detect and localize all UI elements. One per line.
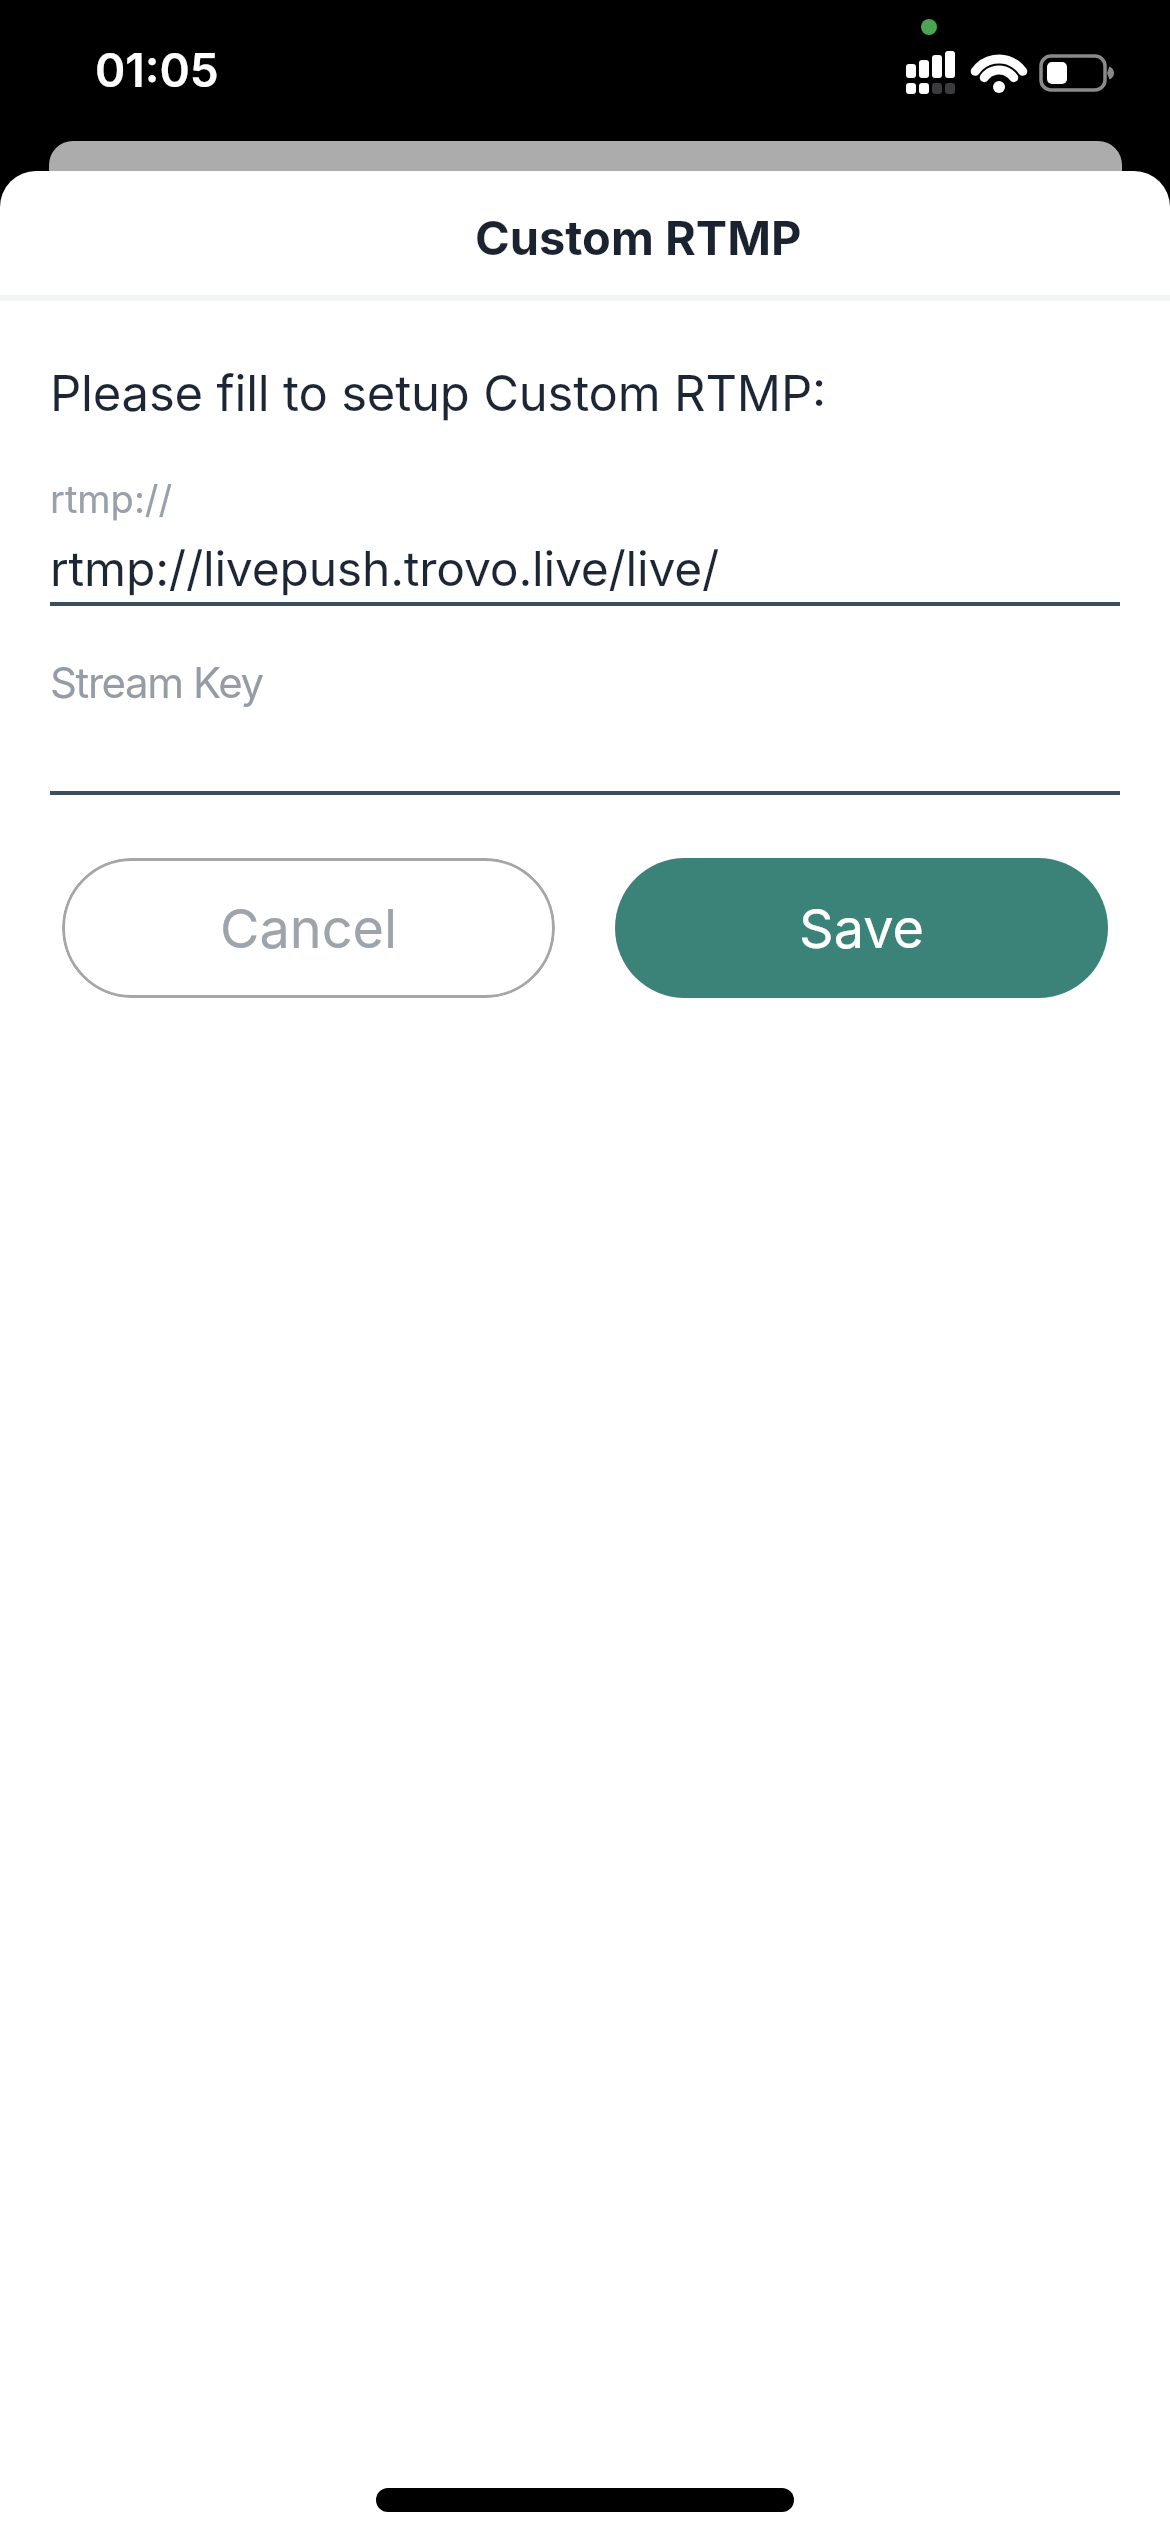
staticText: Please fill to setup Custom RTMP: [50, 364, 826, 423]
staticText: rtmp://livepush.trovo.live/live/ [50, 539, 720, 597]
button[interactable]: Save [615, 858, 1108, 998]
button[interactable]: Cancel [62, 858, 555, 998]
staticText: Save [799, 896, 924, 961]
staticText: rtmp:// [50, 476, 173, 522]
staticText: Custom RTMP [475, 209, 802, 266]
staticText: Stream Key [50, 657, 263, 708]
staticText: Cancel [220, 896, 398, 961]
staticText: 01:05 [95, 42, 219, 98]
